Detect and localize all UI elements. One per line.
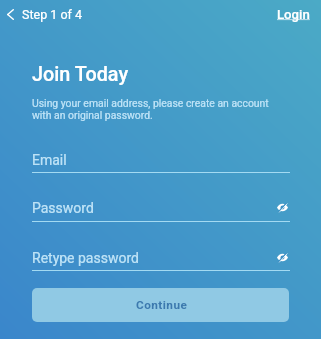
button[interactable]: Continue bbox=[32, 288, 289, 322]
button[interactable]: Toggle password visibility bbox=[271, 196, 293, 218]
button[interactable]: Login bbox=[266, 3, 321, 26]
staticText: Continue bbox=[136, 298, 188, 312]
button[interactable]: Toggle password visibility bbox=[271, 246, 293, 268]
button[interactable]: Password bbox=[32, 194, 290, 222]
staticText: Retype password bbox=[32, 250, 139, 266]
staticText: Join Today bbox=[32, 63, 129, 86]
staticText: Email bbox=[32, 152, 67, 168]
button[interactable]: Step 1 of 4 bbox=[1, 3, 88, 26]
staticText: Password bbox=[32, 200, 94, 216]
button[interactable]: Email bbox=[32, 146, 290, 173]
staticText: Step 1 of 4 bbox=[22, 7, 82, 22]
button[interactable]: Retype password bbox=[32, 244, 290, 271]
staticText: Login bbox=[277, 7, 310, 22]
staticText: Using your email address, please create … bbox=[32, 97, 277, 121]
